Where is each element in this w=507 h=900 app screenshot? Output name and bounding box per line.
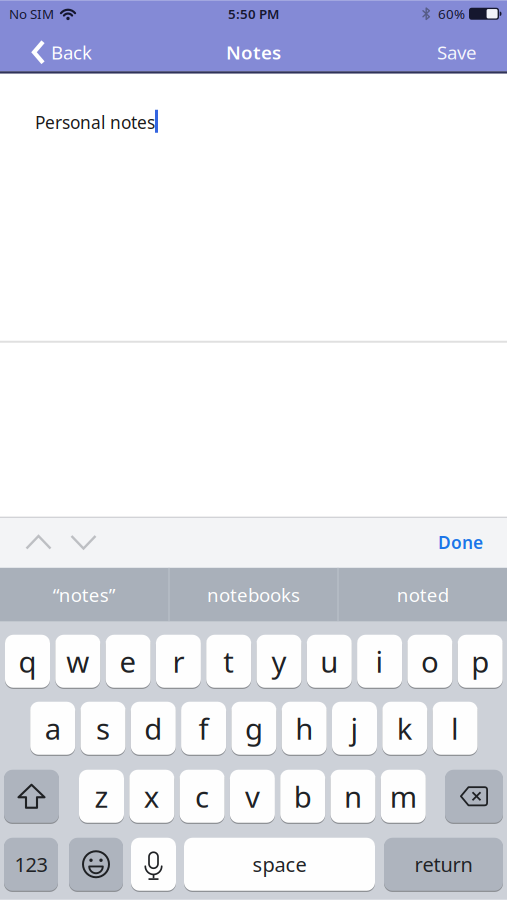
button[interactable]: s: [80, 701, 125, 755]
staticText: notebooks: [207, 582, 300, 607]
staticText: a: [45, 709, 61, 748]
button[interactable]: Dictate: [131, 837, 176, 891]
button[interactable]: y: [256, 634, 301, 688]
button[interactable]: k: [382, 701, 427, 755]
button[interactable]: o: [407, 634, 452, 688]
staticText: 60%: [438, 5, 465, 23]
staticText: return: [414, 851, 472, 878]
staticText: e: [120, 642, 137, 681]
staticText: 5:50 PM: [228, 5, 279, 23]
staticText: x: [144, 777, 160, 816]
button[interactable]: d: [131, 701, 176, 755]
staticText: q: [18, 642, 36, 681]
button[interactable]: Emoji: [69, 837, 123, 891]
button[interactable]: Delete: [445, 769, 503, 823]
staticText: p: [471, 642, 489, 681]
staticText: Notes: [226, 40, 281, 65]
staticText: Back: [51, 40, 92, 65]
button[interactable]: space: [184, 837, 375, 891]
button[interactable]: e: [106, 634, 151, 688]
staticText: n: [344, 777, 362, 816]
button[interactable]: Next field: [52, 534, 97, 550]
button[interactable]: g: [231, 701, 276, 755]
staticText: j: [350, 709, 358, 748]
staticText: m: [390, 777, 417, 816]
staticText: z: [94, 777, 108, 816]
staticText: g: [245, 709, 263, 748]
button[interactable]: p: [458, 634, 503, 688]
button[interactable]: z: [79, 769, 124, 823]
button[interactable]: q: [5, 634, 50, 688]
staticText: v: [245, 777, 260, 816]
button[interactable]: f: [181, 701, 226, 755]
button[interactable]: w: [55, 634, 100, 688]
staticText: u: [320, 642, 338, 681]
button[interactable]: a: [30, 701, 75, 755]
button[interactable]: Done: [438, 531, 507, 554]
button[interactable]: Back: [0, 34, 92, 65]
button[interactable]: Save: [437, 34, 507, 65]
button[interactable]: Shift: [4, 769, 59, 823]
staticText: l: [451, 709, 459, 748]
staticText: k: [397, 709, 413, 748]
button[interactable]: noted: [338, 568, 507, 622]
button[interactable]: v: [230, 769, 275, 823]
staticText: Save: [437, 40, 477, 65]
button[interactable]: c: [180, 769, 225, 823]
button[interactable]: i: [357, 634, 402, 688]
staticText: 123: [14, 851, 47, 878]
staticText: w: [66, 642, 89, 681]
staticText: o: [421, 642, 439, 681]
button[interactable]: “notes”: [0, 568, 168, 622]
staticText: Done: [438, 531, 483, 554]
staticText: c: [195, 777, 209, 816]
staticText: d: [144, 709, 162, 748]
staticText: Personal notes: [35, 111, 155, 134]
button[interactable]: r: [156, 634, 201, 688]
button[interactable]: 123: [4, 837, 58, 891]
staticText: h: [295, 709, 313, 748]
button[interactable]: m: [381, 769, 426, 823]
button[interactable]: j: [332, 701, 377, 755]
staticText: No SIM: [9, 5, 54, 23]
button[interactable]: notebooks: [169, 568, 337, 622]
staticText: i: [376, 642, 384, 681]
button[interactable]: t: [206, 634, 251, 688]
button[interactable]: x: [129, 769, 174, 823]
staticText: space: [252, 851, 306, 878]
staticText: y: [271, 642, 286, 681]
button[interactable]: return: [384, 837, 503, 891]
staticText: s: [96, 709, 110, 748]
staticText: “notes”: [53, 582, 116, 607]
staticText: noted: [397, 582, 449, 607]
button[interactable]: Previous field: [0, 534, 52, 550]
button[interactable]: u: [307, 634, 352, 688]
button[interactable]: b: [280, 769, 325, 823]
staticText: r: [172, 642, 184, 681]
staticText: t: [223, 642, 234, 681]
button[interactable]: l: [433, 701, 478, 755]
button[interactable]: h: [282, 701, 327, 755]
staticText: f: [199, 709, 209, 748]
button[interactable]: n: [330, 769, 375, 823]
staticText: b: [294, 777, 312, 816]
